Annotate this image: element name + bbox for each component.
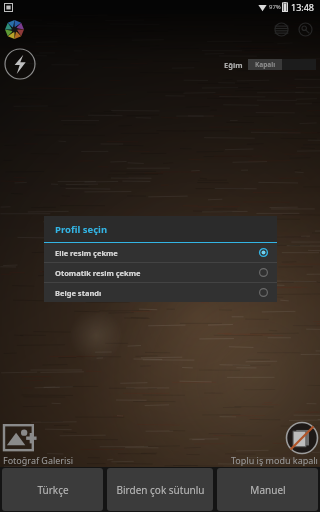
staticText: 97% (269, 3, 281, 11)
staticText: Fotoğraf Galerisi (3, 454, 74, 466)
button[interactable]: Flash (3, 47, 37, 81)
staticText: Elle resim çekme (55, 248, 118, 258)
button[interactable]: App logo (3, 18, 25, 40)
staticText: Otomatik resim çekme (55, 268, 141, 278)
button[interactable]: Toplu iş modu kapalı (231, 422, 320, 467)
button[interactable]: Elle resim çekme (44, 243, 277, 262)
button[interactable]: Kapalı (248, 59, 282, 70)
button[interactable]: List (270, 18, 292, 40)
staticText: Manuel (250, 483, 286, 497)
button[interactable]: Birden çok sütunlu (107, 468, 213, 511)
staticText: Toplu iş modu kapalı (231, 454, 318, 466)
button[interactable]: Türkçe (2, 468, 103, 511)
staticText: Belge standı (55, 288, 102, 298)
staticText: Kapalı (255, 60, 276, 69)
staticText: Profil seçin (55, 223, 108, 236)
staticText: Eğim (224, 60, 243, 70)
button[interactable]: Manuel (217, 468, 318, 511)
staticText: 13:48 (291, 1, 315, 13)
button[interactable]: Settings (294, 18, 316, 40)
button[interactable]: Fotoğraf Galerisi (0, 422, 74, 467)
staticText: Birden çok sütunlu (116, 483, 205, 497)
button[interactable]: Belge standı (44, 283, 277, 302)
button[interactable]: Otomatik resim çekme (44, 263, 277, 282)
staticText: Türkçe (37, 483, 69, 497)
